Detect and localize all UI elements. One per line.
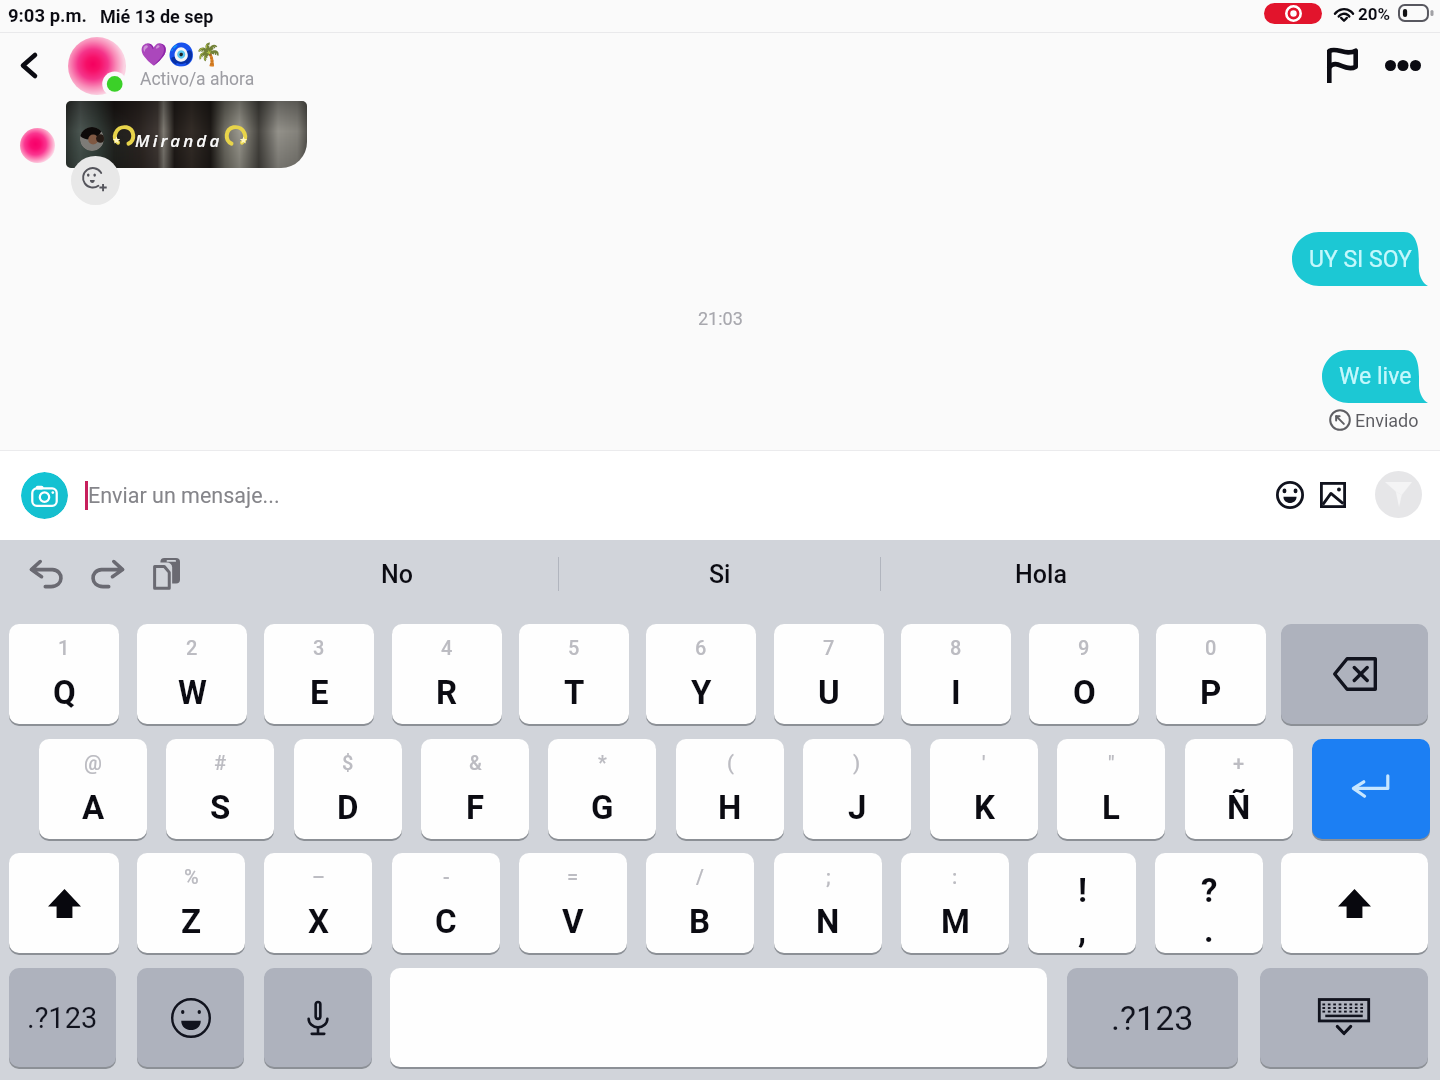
button[interactable]: ( xyxy=(676,739,784,839)
button[interactable]: % xyxy=(137,853,245,953)
button[interactable]: – xyxy=(264,853,372,953)
staticText: R xyxy=(436,673,458,712)
button[interactable]: Emoji keyboard xyxy=(137,968,244,1067)
button[interactable]: $ xyxy=(294,739,402,839)
staticText: 21:03 xyxy=(698,308,743,329)
staticText: 3 xyxy=(313,636,325,659)
button[interactable]: ? xyxy=(1155,853,1263,953)
button[interactable]: Shift xyxy=(1281,853,1428,953)
button[interactable]: Add reaction xyxy=(71,156,120,205)
button[interactable]: + xyxy=(1185,739,1293,839)
staticText: Mié 13 de sep xyxy=(100,6,214,27)
button[interactable]: ! xyxy=(1028,853,1136,953)
button[interactable]: 9 xyxy=(1029,624,1139,724)
button[interactable]: UY SI SOY xyxy=(1292,232,1428,286)
staticText: U xyxy=(818,673,840,712)
staticText: D xyxy=(337,788,359,827)
button[interactable]: & xyxy=(421,739,529,839)
staticText: & xyxy=(469,751,482,774)
button[interactable]: Stickers xyxy=(1262,467,1318,523)
staticText: 💜🧿🌴 xyxy=(140,42,223,68)
button[interactable]: Miranda xyxy=(66,101,307,168)
button[interactable]: Paste xyxy=(145,553,187,595)
staticText: - xyxy=(443,865,450,888)
button[interactable]: ) xyxy=(803,739,911,839)
staticText: C xyxy=(435,902,457,941)
other: Shift xyxy=(1338,889,1371,918)
staticText: ( xyxy=(727,751,734,774)
button[interactable]: 5 xyxy=(519,624,629,724)
button[interactable]: Camera xyxy=(21,472,68,519)
button[interactable]: 2 xyxy=(137,624,247,724)
button[interactable]: / xyxy=(646,853,754,953)
button[interactable]: Back xyxy=(0,32,60,99)
staticText: 20% xyxy=(1358,4,1391,24)
button[interactable]: We live xyxy=(1322,350,1428,403)
button[interactable]: - xyxy=(392,853,500,953)
other: Backspace xyxy=(1333,657,1377,691)
button[interactable]: Enter xyxy=(1312,739,1430,839)
button[interactable]: Undo xyxy=(26,553,68,595)
button[interactable]: 6 xyxy=(646,624,756,724)
button[interactable]: Hide keyboard xyxy=(1260,968,1428,1067)
button[interactable]: More options xyxy=(1372,32,1434,99)
staticText: 1 xyxy=(58,636,70,659)
staticText: 9:03 p.m. xyxy=(8,5,87,27)
button[interactable]: 8 xyxy=(901,624,1011,724)
staticText: ! xyxy=(1078,871,1087,910)
button[interactable]: = xyxy=(519,853,627,953)
staticText: Y xyxy=(691,673,712,712)
button[interactable]: : xyxy=(901,853,1009,953)
staticText: Enviado xyxy=(1355,410,1419,431)
button[interactable]: " xyxy=(1057,739,1165,839)
button[interactable]: Send xyxy=(1375,471,1422,518)
button[interactable]: 4 xyxy=(392,624,502,724)
staticText: Z xyxy=(181,902,202,941)
button[interactable]: 💜🧿🌴 xyxy=(68,32,628,99)
button[interactable]: Redo xyxy=(86,553,128,595)
button[interactable]: ' xyxy=(930,739,1038,839)
button[interactable]: Shift xyxy=(9,853,119,953)
staticText: .?123 xyxy=(27,1001,98,1035)
staticText: – xyxy=(312,865,325,888)
button[interactable]: Enviar un mensaje... xyxy=(80,450,1260,540)
button[interactable]: Dictate xyxy=(264,968,372,1067)
button[interactable]: 1 xyxy=(9,624,119,724)
staticText: " xyxy=(1108,751,1115,774)
button[interactable]: Gallery xyxy=(1305,467,1361,523)
button[interactable]: Report xyxy=(1310,32,1374,99)
button[interactable]: Hola xyxy=(881,540,1201,608)
button[interactable]: # xyxy=(166,739,274,839)
staticText: No xyxy=(381,560,413,589)
button[interactable]: Si xyxy=(559,540,880,608)
button[interactable]: Screen recording xyxy=(1264,3,1322,24)
staticText: .?123 xyxy=(1111,998,1194,1038)
staticText: We live xyxy=(1339,363,1412,390)
staticText: V xyxy=(562,902,584,941)
button[interactable]: 3 xyxy=(264,624,374,724)
button[interactable]: 7 xyxy=(774,624,884,724)
staticText: X xyxy=(308,902,329,941)
staticText: S xyxy=(210,788,231,827)
button[interactable]: 0 xyxy=(1156,624,1266,724)
button[interactable]: .?123 xyxy=(1067,968,1238,1067)
staticText: I xyxy=(951,673,961,712)
button[interactable]: * xyxy=(548,739,656,839)
staticText: A xyxy=(82,788,105,827)
button[interactable]: No xyxy=(236,540,558,608)
button[interactable]: ; xyxy=(774,853,882,953)
staticText: @ xyxy=(84,751,102,774)
staticText: , xyxy=(1078,911,1087,950)
staticText: M xyxy=(941,902,970,941)
button[interactable]: @ xyxy=(39,739,147,839)
staticText: ) xyxy=(853,751,861,774)
staticText: F xyxy=(466,788,485,827)
button[interactable]: .?123 xyxy=(9,968,116,1067)
staticText: J xyxy=(848,788,867,827)
staticText: G xyxy=(591,788,614,827)
button[interactable]: Backspace xyxy=(1281,624,1428,724)
staticText: UY SI SOY xyxy=(1309,246,1412,273)
staticText: Q xyxy=(53,673,76,712)
staticText: % xyxy=(184,865,199,888)
